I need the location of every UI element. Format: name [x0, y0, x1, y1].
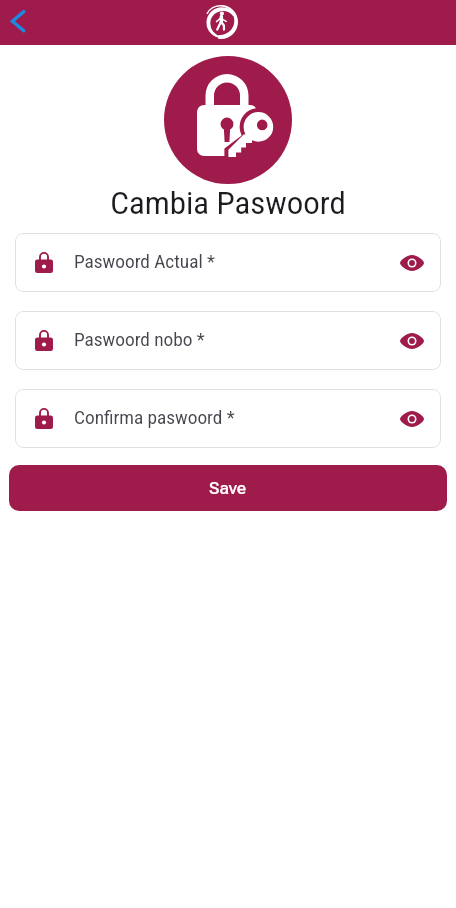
staticText: Save — [209, 478, 247, 498]
button[interactable]: Back — [0, 0, 40, 45]
staticText: Confirma paswoord * — [74, 407, 235, 428]
button[interactable]: Show password — [390, 397, 434, 441]
button[interactable]: Show password — [390, 319, 434, 363]
staticText: Paswoord Actual * — [74, 251, 215, 272]
staticText: Cambia Paswoord — [0, 185, 456, 222]
button[interactable]: Save — [9, 465, 447, 511]
button[interactable]: Confirma paswoord * — [15, 389, 441, 448]
button[interactable]: Show password — [390, 241, 434, 285]
button[interactable]: Paswoord nobo * — [15, 311, 441, 370]
button[interactable]: Paswoord Actual * — [15, 233, 441, 292]
staticText: Paswoord nobo * — [74, 329, 205, 350]
